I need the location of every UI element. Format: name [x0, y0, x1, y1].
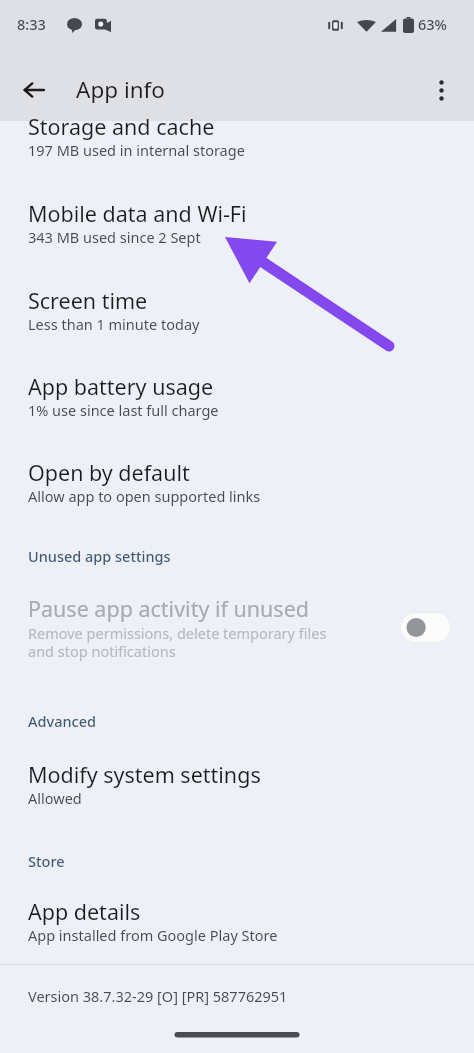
- staticText: 63%: [418, 14, 447, 34]
- staticText: Allowed: [28, 788, 82, 808]
- staticText: 8:33: [17, 14, 46, 34]
- staticText: Store: [28, 851, 65, 871]
- staticText: Advanced: [28, 711, 96, 731]
- button[interactable]: More options: [420, 68, 462, 112]
- button[interactable]: Open by default: [0, 458, 474, 530]
- button[interactable]: Storage and cache: [0, 121, 474, 176]
- button[interactable]: App details: [0, 897, 474, 969]
- staticText: App installed from Google Play Store: [28, 925, 278, 945]
- staticText: Allow app to open supported links: [28, 486, 261, 506]
- staticText: App details: [28, 897, 141, 926]
- staticText: 343 MB used since 2 Sept: [28, 227, 201, 247]
- staticText: 197 MB used in internal storage: [28, 140, 245, 160]
- staticText: Screen time: [28, 286, 148, 315]
- button[interactable]: Pause app activity if unused toggle: [400, 612, 451, 643]
- staticText: 1% use since last full charge: [28, 400, 219, 420]
- staticText: App info: [76, 74, 165, 105]
- staticText: Version 38.7.32-29 [O] [PR] 587762951: [28, 986, 288, 1006]
- staticText: Remove permissions, delete temporary fil…: [28, 623, 327, 643]
- staticText: Modify system settings: [28, 760, 261, 789]
- staticText: and stop notifications: [28, 641, 176, 661]
- button[interactable]: Screen time: [0, 286, 474, 358]
- staticText: Pause app activity if unused: [28, 594, 309, 623]
- button[interactable]: Back: [12, 68, 56, 112]
- button[interactable]: App battery usage: [0, 372, 474, 444]
- button[interactable]: Pause app activity if unused: [0, 594, 474, 672]
- staticText: Open by default: [28, 458, 190, 487]
- staticText: Unused app settings: [28, 546, 171, 566]
- staticText: App battery usage: [28, 372, 214, 401]
- staticText: Less than 1 minute today: [28, 314, 200, 334]
- staticText: Mobile data and Wi-Fi: [28, 199, 247, 228]
- button[interactable]: Mobile data and Wi-Fi: [0, 199, 474, 271]
- staticText: Storage and cache: [28, 112, 215, 141]
- button[interactable]: Modify system settings: [0, 760, 474, 832]
